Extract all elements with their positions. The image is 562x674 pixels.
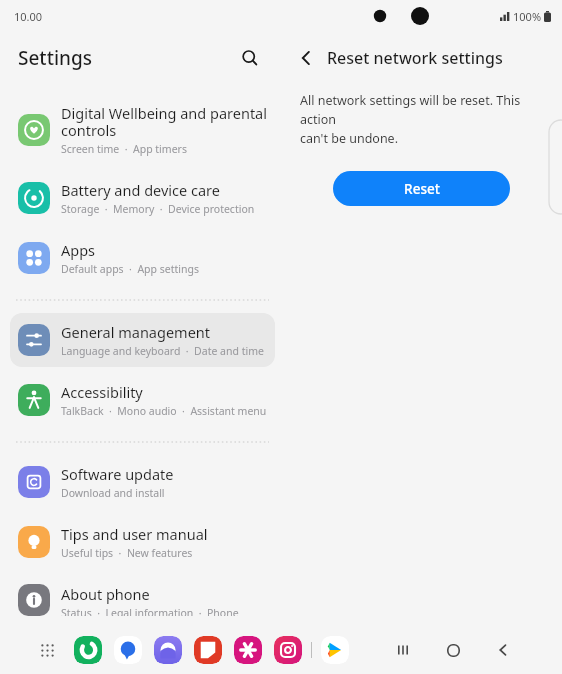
button[interactable]: Back: [291, 43, 321, 73]
button[interactable]: Internet: [154, 636, 182, 664]
staticText: Tips and user manual: [61, 524, 208, 544]
staticText: Battery and device care: [61, 180, 220, 200]
button[interactable]: Messages: [114, 636, 142, 664]
button[interactable]: General management: [10, 313, 275, 367]
button[interactable]: About phone: [10, 575, 275, 625]
staticText: Status · Legal information · Phone name: [61, 606, 269, 616]
button[interactable]: Instagram: [274, 636, 302, 664]
staticText: About phone: [61, 584, 150, 604]
button[interactable]: Recent apps: [386, 633, 420, 667]
staticText: TalkBack · Mono audio · Assistant menu: [61, 404, 267, 418]
staticText: General management: [61, 322, 211, 342]
staticText: Download and install: [61, 486, 165, 500]
staticText: Language and keyboard · Date and time: [61, 344, 264, 358]
button[interactable]: Search: [235, 43, 265, 73]
staticText: All network settings will be reset. This…: [300, 92, 547, 147]
button[interactable]: Back: [486, 633, 520, 667]
staticText: Accessibility: [61, 382, 143, 402]
staticText: Digital Wellbeing and parental controls: [61, 103, 267, 140]
button[interactable]: Galaxy Store: [234, 636, 262, 664]
staticText: 100%: [513, 9, 542, 24]
staticText: Storage · Memory · Device protection: [61, 202, 255, 216]
staticText: Default apps · App settings: [61, 262, 199, 276]
button[interactable]: Samsung Notes: [194, 636, 222, 664]
button[interactable]: Battery and device care: [10, 171, 275, 225]
staticText: Screen time · App timers: [61, 142, 187, 156]
button[interactable]: Home: [436, 633, 470, 667]
staticText: Reset network settings: [327, 47, 503, 69]
button[interactable]: Reset: [333, 171, 510, 206]
staticText: Reset: [404, 180, 440, 198]
button[interactable]: Apps: [10, 231, 275, 285]
button[interactable]: All apps: [32, 635, 62, 665]
staticText: Apps: [61, 240, 96, 260]
staticText: 10.00: [14, 9, 43, 24]
button[interactable]: Play Store: [321, 636, 349, 664]
button[interactable]: Digital Wellbeing and parental controls: [10, 94, 275, 165]
staticText: Useful tips · New features: [61, 546, 193, 560]
button[interactable]: Accessibility: [10, 373, 275, 427]
button[interactable]: Phone: [74, 636, 102, 664]
button[interactable]: Tips and user manual: [10, 515, 275, 569]
button[interactable]: Software update: [10, 455, 275, 509]
staticText: Software update: [61, 464, 174, 484]
staticText: Settings: [18, 45, 92, 71]
